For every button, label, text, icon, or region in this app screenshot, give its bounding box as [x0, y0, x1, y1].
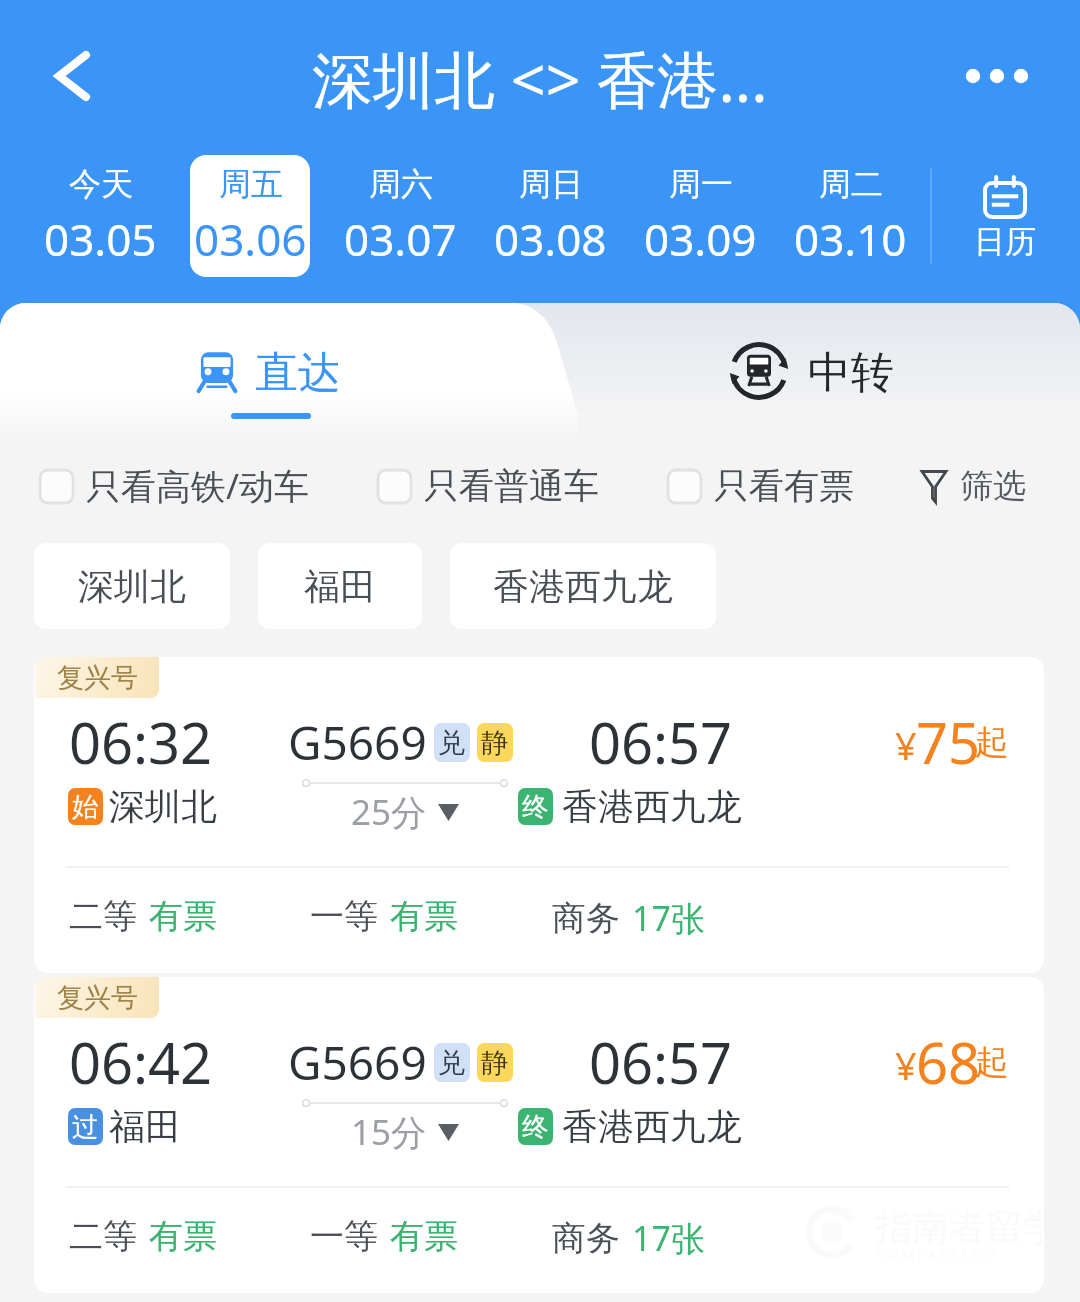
staticText: 06:57: [589, 704, 733, 780]
staticText: 终: [522, 790, 549, 824]
staticText: ¥: [895, 719, 917, 771]
staticText: 筛选: [960, 465, 1026, 507]
button[interactable]: More options: [952, 43, 1044, 109]
button[interactable]: 香港西九龙: [450, 543, 716, 629]
staticText: 周六: [369, 164, 433, 204]
staticText: 香港西九龙: [562, 784, 742, 829]
staticText: 二等: [69, 1215, 137, 1258]
staticText: 03.05: [44, 209, 157, 269]
staticText: 商务: [552, 1217, 620, 1260]
staticText: 终: [522, 1110, 549, 1144]
staticText: 有票: [149, 1215, 217, 1258]
staticText: 只看普通车: [424, 464, 599, 508]
button[interactable]: [0, 303, 540, 425]
button[interactable]: 周二: [790, 155, 910, 277]
staticText: 静: [481, 726, 509, 760]
staticText: 有票: [390, 1215, 458, 1258]
staticText: 一等: [310, 1215, 378, 1258]
staticText: 周二: [819, 164, 883, 204]
staticText: 复兴号: [57, 661, 138, 695]
staticText: 03.09: [644, 209, 757, 269]
staticText: 起: [975, 721, 1009, 764]
staticText: 周五: [219, 164, 283, 204]
button[interactable]: 周六: [340, 155, 460, 277]
staticText: 68: [916, 1024, 981, 1100]
staticText: 有票: [390, 895, 458, 938]
staticText: 只看有票: [714, 464, 854, 508]
staticText: 香港西九龙: [493, 564, 673, 609]
staticText: 周一: [669, 164, 733, 204]
button[interactable]: Back: [30, 43, 96, 109]
staticText: 75: [916, 704, 981, 780]
staticText: 只看高铁/动车: [86, 462, 310, 510]
button[interactable]: 周日: [490, 155, 610, 277]
button[interactable]: 只看高铁/动车: [36, 451, 310, 521]
staticText: 兑: [438, 1046, 466, 1080]
button[interactable]: 今天: [40, 155, 160, 277]
staticText: 静: [481, 1046, 509, 1080]
staticText: ¥: [895, 1039, 917, 1091]
staticText: 17张: [632, 895, 705, 941]
staticText: 起: [975, 1041, 1009, 1084]
staticText: G5669: [288, 1031, 427, 1094]
staticText: 周日: [519, 164, 583, 204]
staticText: 03.07: [344, 209, 457, 269]
button[interactable]: 深圳北: [34, 543, 230, 629]
staticText: 今天: [69, 164, 133, 204]
staticText: 03.08: [494, 209, 607, 269]
staticText: 福田: [304, 564, 376, 609]
staticText: 深圳北: [78, 564, 186, 609]
staticText: 日历: [974, 222, 1036, 261]
button[interactable]: Calendar: [945, 158, 1065, 280]
staticText: 03.10: [794, 209, 907, 269]
staticText: 06:57: [589, 1024, 733, 1100]
staticText: 兑: [438, 726, 466, 760]
staticText: 中转: [808, 346, 894, 400]
staticText: 商务: [552, 897, 620, 940]
staticText: 复兴号: [57, 981, 138, 1015]
button[interactable]: [540, 303, 1080, 425]
staticText: 25分: [351, 788, 427, 836]
staticText: G5669: [288, 711, 427, 774]
button[interactable]: 只看有票: [664, 451, 854, 521]
staticText: 一等: [310, 895, 378, 938]
staticText: 03.06: [194, 209, 307, 269]
staticText: 二等: [69, 895, 137, 938]
button[interactable]: 复兴号: [34, 977, 1044, 1293]
staticText: 直达: [255, 346, 341, 400]
staticText: 15分: [351, 1108, 427, 1156]
staticText: 过: [72, 1110, 99, 1144]
button[interactable]: 周五: [190, 155, 310, 277]
button[interactable]: 筛选: [921, 451, 1080, 521]
staticText: 17张: [632, 1215, 705, 1261]
button[interactable]: 只看普通车: [374, 451, 599, 521]
staticText: 深圳北 <> 香港...: [312, 37, 768, 120]
staticText: 06:32: [69, 704, 213, 780]
button[interactable]: 周一: [640, 155, 760, 277]
button[interactable]: 福田: [258, 543, 422, 629]
staticText: 福田: [109, 1104, 181, 1149]
staticText: 06:42: [69, 1024, 213, 1100]
staticText: 香港西九龙: [562, 1104, 742, 1149]
button[interactable]: 复兴号: [34, 657, 1044, 973]
staticText: 有票: [149, 895, 217, 938]
staticText: 深圳北: [109, 784, 217, 829]
staticText: 始: [72, 790, 99, 824]
